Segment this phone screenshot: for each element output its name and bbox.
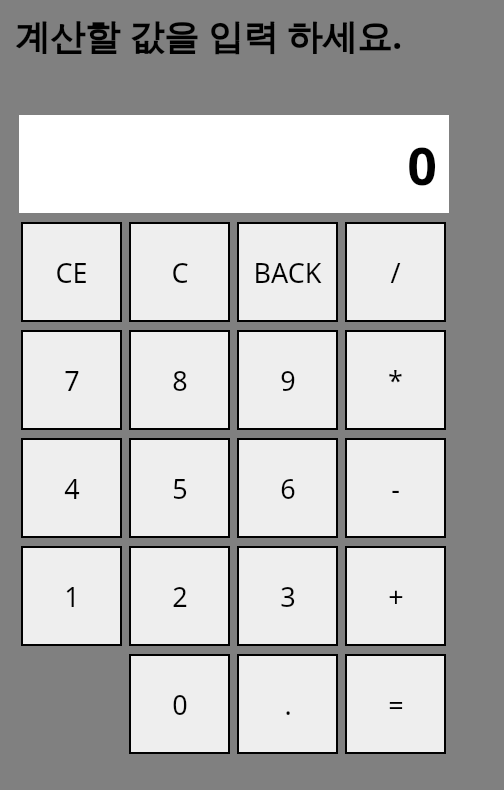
- staticText: 3: [280, 578, 296, 615]
- button[interactable]: 6: [237, 438, 338, 538]
- staticText: CE: [55, 254, 88, 291]
- staticText: 7: [64, 362, 80, 399]
- button[interactable]: 0: [129, 654, 230, 754]
- button[interactable]: CE: [21, 222, 122, 322]
- staticText: 9: [280, 362, 296, 399]
- button[interactable]: 9: [237, 330, 338, 430]
- staticText: 0: [407, 129, 437, 200]
- staticText: BACK: [253, 254, 322, 291]
- staticText: 1: [64, 578, 80, 615]
- button[interactable]: /: [345, 222, 446, 322]
- button[interactable]: *: [345, 330, 446, 430]
- staticText: /: [390, 254, 401, 291]
- button[interactable]: 7: [21, 330, 122, 430]
- staticText: 6: [280, 470, 296, 507]
- button[interactable]: 2: [129, 546, 230, 646]
- staticText: +: [388, 578, 404, 615]
- staticText: 계산할 값을 입력 하세요.: [15, 12, 403, 60]
- button[interactable]: 4: [21, 438, 122, 538]
- staticText: 8: [172, 362, 188, 399]
- staticText: -: [391, 470, 400, 507]
- button[interactable]: 8: [129, 330, 230, 430]
- button[interactable]: .: [237, 654, 338, 754]
- button[interactable]: C: [129, 222, 230, 322]
- staticText: 4: [64, 470, 80, 507]
- button[interactable]: 5: [129, 438, 230, 538]
- button[interactable]: +: [345, 546, 446, 646]
- button[interactable]: 0: [19, 115, 449, 213]
- staticText: 2: [172, 578, 188, 615]
- button[interactable]: 1: [21, 546, 122, 646]
- staticText: 5: [172, 470, 188, 507]
- staticText: *: [388, 362, 403, 399]
- button[interactable]: BACK: [237, 222, 338, 322]
- staticText: =: [388, 686, 404, 723]
- staticText: .: [284, 686, 292, 723]
- button[interactable]: -: [345, 438, 446, 538]
- staticText: 0: [172, 686, 188, 723]
- button[interactable]: =: [345, 654, 446, 754]
- staticText: C: [171, 254, 189, 291]
- button[interactable]: 3: [237, 546, 338, 646]
